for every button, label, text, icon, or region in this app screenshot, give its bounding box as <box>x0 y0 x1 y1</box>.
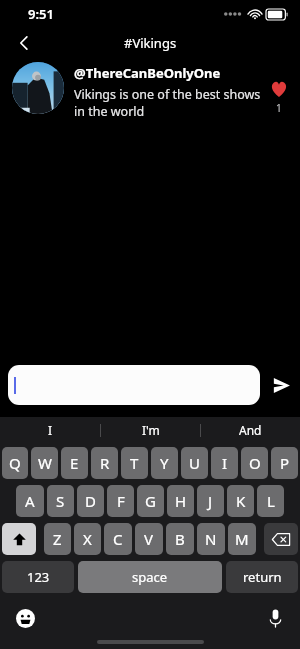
button[interactable]: R <box>91 447 118 479</box>
button[interactable]: Shift <box>2 523 36 555</box>
button[interactable]: D <box>77 485 104 517</box>
staticText: U <box>189 453 200 473</box>
button[interactable]: U <box>181 447 208 479</box>
staticText: And <box>239 422 262 438</box>
staticText: 123 <box>27 568 50 586</box>
button[interactable]: @ThereCanBeOnlyOne <box>12 62 292 119</box>
button[interactable]: Send <box>268 368 294 402</box>
staticText: 9:51 <box>28 5 54 23</box>
staticText: W <box>38 453 52 473</box>
button[interactable]: T <box>121 447 148 479</box>
staticText: I <box>48 422 53 438</box>
staticText: N <box>205 529 217 549</box>
button[interactable]: Z <box>44 523 71 555</box>
staticText: return <box>243 568 282 586</box>
staticText: Vikings is one of the best shows in the … <box>74 86 264 119</box>
button[interactable]: J <box>197 485 224 517</box>
button[interactable]: I'm <box>101 417 200 443</box>
button[interactable]: I <box>211 447 238 479</box>
staticText: E <box>70 453 79 473</box>
staticText: 1 <box>276 101 282 115</box>
button[interactable]: Q <box>2 447 28 479</box>
button[interactable]: H <box>167 485 194 517</box>
button[interactable]: I <box>0 417 100 443</box>
button[interactable]: X <box>74 523 101 555</box>
button[interactable]: W <box>31 447 58 479</box>
button[interactable]: M <box>228 523 256 555</box>
button[interactable]: Voice input <box>262 605 288 631</box>
staticText: C <box>113 529 123 549</box>
button[interactable]: S <box>47 485 74 517</box>
staticText: H <box>175 491 187 511</box>
staticText: R <box>100 453 110 473</box>
staticText: O <box>249 453 261 473</box>
button[interactable]: V <box>135 523 163 555</box>
staticText: T <box>130 453 139 473</box>
button[interactable]: Back <box>8 28 40 58</box>
button[interactable]: space <box>78 561 222 593</box>
staticText: Q <box>9 453 21 473</box>
staticText: V <box>144 529 154 549</box>
staticText: Y <box>160 453 169 473</box>
staticText: I <box>222 453 228 473</box>
staticText: K <box>236 491 246 511</box>
button[interactable]: P <box>271 447 298 479</box>
button[interactable]: E <box>61 447 88 479</box>
button[interactable]: G <box>137 485 164 517</box>
button[interactable]: C <box>104 523 132 555</box>
button[interactable]: return <box>226 561 298 593</box>
button[interactable]: O <box>241 447 268 479</box>
button[interactable]: Y <box>151 447 178 479</box>
button[interactable]: N <box>197 523 225 555</box>
staticText: G <box>145 491 156 511</box>
staticText: B <box>175 529 185 549</box>
button[interactable]: Emoji <box>12 605 38 631</box>
staticText: space <box>132 568 168 586</box>
staticText: F <box>117 491 125 511</box>
staticText: A <box>25 491 35 511</box>
staticText: X <box>83 529 92 549</box>
button[interactable]: A <box>16 485 44 517</box>
button[interactable]: And <box>201 417 300 443</box>
button[interactable]: L <box>257 485 284 517</box>
staticText: I'm <box>142 422 160 438</box>
button[interactable]: B <box>166 523 194 555</box>
staticText: J <box>208 491 213 511</box>
button[interactable]: Backspace <box>264 523 298 555</box>
button[interactable] <box>8 365 260 405</box>
staticText: L <box>267 491 275 511</box>
staticText: S <box>56 491 65 511</box>
staticText: D <box>85 491 96 511</box>
staticText: Z <box>53 529 62 549</box>
staticText: @ThereCanBeOnlyOne <box>74 64 221 82</box>
staticText: #Vikings <box>124 34 177 52</box>
button[interactable]: K <box>227 485 254 517</box>
button[interactable]: 123 <box>2 561 74 593</box>
button[interactable]: F <box>107 485 134 517</box>
staticText: P <box>280 453 290 473</box>
staticText: M <box>235 529 249 549</box>
button[interactable]: Like <box>270 80 288 115</box>
